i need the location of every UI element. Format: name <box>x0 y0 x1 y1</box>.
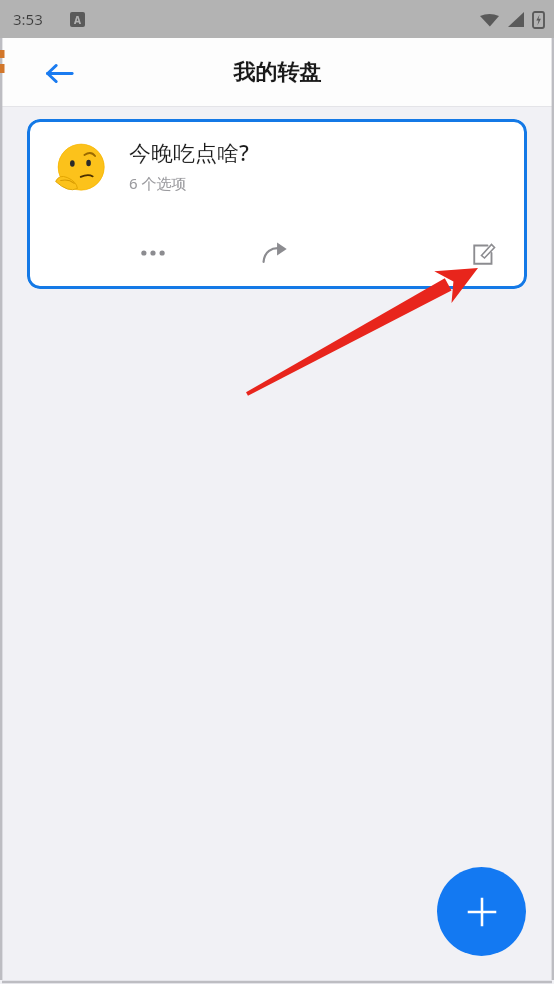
button[interactable]: Back <box>33 47 85 99</box>
button[interactable]: Add <box>437 867 526 956</box>
button[interactable]: 今晚吃点啥? <box>27 119 527 289</box>
staticText: 我的转盘 <box>233 59 321 87</box>
staticText: 今晚吃点啥? <box>129 137 249 167</box>
button[interactable]: Edit <box>459 231 505 277</box>
staticText: 6 个选项 <box>129 173 187 193</box>
staticText: 3:53 <box>13 9 43 29</box>
button[interactable]: More options <box>131 231 175 275</box>
staticText: A <box>74 13 81 27</box>
button[interactable]: Share <box>252 231 298 277</box>
